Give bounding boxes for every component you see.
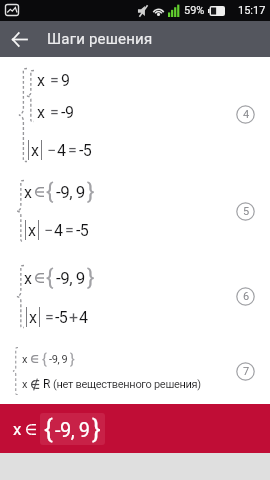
staticText: -9, 9 — [56, 268, 85, 288]
staticText: 4 — [54, 221, 63, 240]
staticText: 6 — [243, 290, 249, 303]
staticText: } — [87, 179, 95, 205]
staticText: 4 — [79, 308, 88, 327]
staticText: x — [29, 308, 37, 327]
staticText: R — [43, 377, 51, 391]
staticText: { — [46, 265, 54, 291]
staticText: -9, 9 — [55, 418, 90, 441]
staticText: − — [47, 141, 56, 160]
staticText: x — [28, 221, 36, 240]
staticText: x — [24, 183, 32, 202]
staticText: -5 — [55, 308, 68, 327]
staticText: x — [22, 353, 28, 366]
staticText: -9, 9 — [49, 353, 68, 366]
button[interactable]: x — [0, 404, 270, 453]
staticText: x — [13, 419, 22, 439]
staticText: = — [50, 71, 59, 90]
button[interactable]: 6 — [236, 287, 255, 306]
staticText: Шаги решения — [47, 30, 153, 48]
staticText: = — [65, 221, 74, 240]
staticText: 59% — [184, 4, 205, 17]
button[interactable]: 4 — [236, 105, 255, 124]
staticText: -5 — [76, 221, 89, 240]
button[interactable]: 7 — [236, 362, 255, 381]
staticText: 9 — [61, 71, 70, 90]
button[interactable] — [6, 26, 32, 52]
staticText: (нет вещественного решения) — [53, 378, 201, 391]
button[interactable]: 5 — [236, 202, 255, 221]
staticText: 7 — [243, 365, 249, 378]
staticText: 4 — [243, 108, 249, 121]
staticText: = — [45, 308, 54, 327]
staticText: } — [87, 265, 95, 291]
staticText: { — [44, 414, 53, 444]
staticText: = — [68, 141, 77, 160]
staticText: 5 — [243, 205, 249, 218]
staticText: { — [42, 351, 47, 367]
staticText: } — [92, 414, 101, 444]
staticText: x — [37, 71, 45, 90]
staticText: 15:17 — [238, 4, 266, 17]
staticText: = — [50, 103, 59, 122]
staticText: -9 — [61, 103, 74, 122]
staticText: -9, 9 — [56, 182, 85, 202]
staticText: } — [70, 351, 75, 367]
staticText: { — [46, 179, 54, 205]
staticText: x — [37, 103, 45, 122]
staticText: x — [24, 269, 32, 288]
staticText: 4 — [57, 141, 66, 160]
staticText: + — [69, 308, 78, 327]
staticText: x — [31, 141, 39, 160]
staticText: -5 — [79, 141, 92, 160]
staticText: x — [22, 378, 28, 391]
staticText: − — [44, 221, 53, 240]
